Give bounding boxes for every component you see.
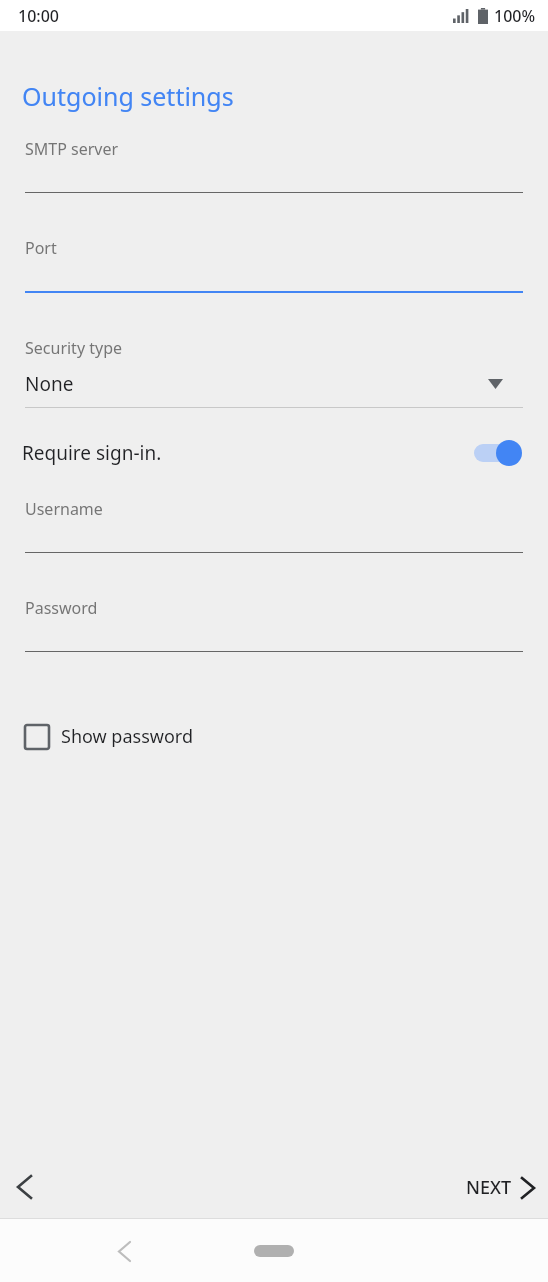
staticText: Port [25, 237, 57, 259]
staticText: 100% [494, 5, 536, 27]
button[interactable]: Require sign-in toggle [472, 438, 526, 468]
button[interactable]: Port [0, 237, 548, 337]
staticText: NEXT [466, 1175, 512, 1200]
button[interactable]: System back [100, 1227, 148, 1275]
staticText: Password [25, 597, 98, 619]
button[interactable]: Back [0, 1163, 48, 1211]
staticText: Security type [25, 337, 123, 359]
staticText: 10:00 [18, 5, 59, 27]
button[interactable]: NEXT [450, 1165, 548, 1210]
staticText: Require sign-in. [22, 440, 472, 466]
staticText: SMTP server [25, 138, 119, 160]
button[interactable]: SMTP server [0, 138, 548, 237]
staticText: Username [25, 498, 103, 520]
button[interactable]: Password [0, 597, 548, 696]
button[interactable]: Require sign-in. [0, 434, 548, 472]
button[interactable]: Home [254, 1245, 294, 1257]
staticText: Show password [61, 724, 193, 749]
button[interactable]: Show password [0, 718, 209, 755]
button[interactable]: Security type [0, 337, 548, 408]
button[interactable]: Username [0, 498, 548, 597]
staticText: Outgoing settings [22, 79, 234, 113]
staticText: None [25, 371, 488, 397]
